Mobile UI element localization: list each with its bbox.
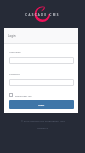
button[interactable] xyxy=(9,79,74,86)
staticText: Login xyxy=(38,103,45,106)
button[interactable] xyxy=(9,57,74,64)
staticText: Username xyxy=(9,50,21,53)
staticText: Password xyxy=(9,72,20,75)
staticText: CASCADE CMS xyxy=(25,13,60,17)
button[interactable]: Remember me xyxy=(9,93,32,97)
staticText: Version 8 xyxy=(37,126,48,129)
staticText: Login xyxy=(8,34,16,38)
button[interactable]: Login xyxy=(9,100,74,109)
staticText: © 2019 Hannon Hill Corporation v8.0 xyxy=(21,119,65,122)
staticText: Remember me xyxy=(15,94,32,97)
